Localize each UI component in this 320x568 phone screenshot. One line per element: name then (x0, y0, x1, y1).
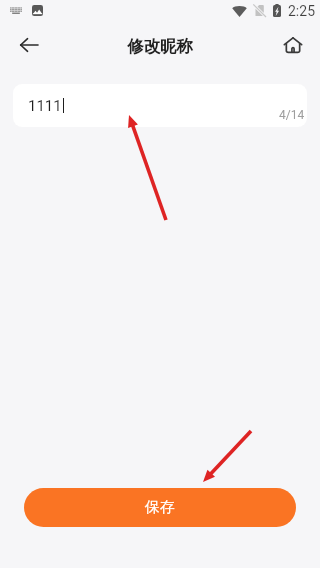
button[interactable]: Back (9, 22, 49, 68)
staticText: 保存 (145, 498, 175, 517)
staticText: 4/14 (279, 108, 305, 122)
staticText: 1111 (28, 97, 62, 115)
button[interactable]: 1111 (13, 84, 307, 127)
staticText: 修改昵称 (127, 36, 193, 57)
button[interactable]: 保存 (24, 488, 296, 527)
staticText: 2:25 (288, 3, 315, 19)
button[interactable]: Home (273, 22, 313, 68)
